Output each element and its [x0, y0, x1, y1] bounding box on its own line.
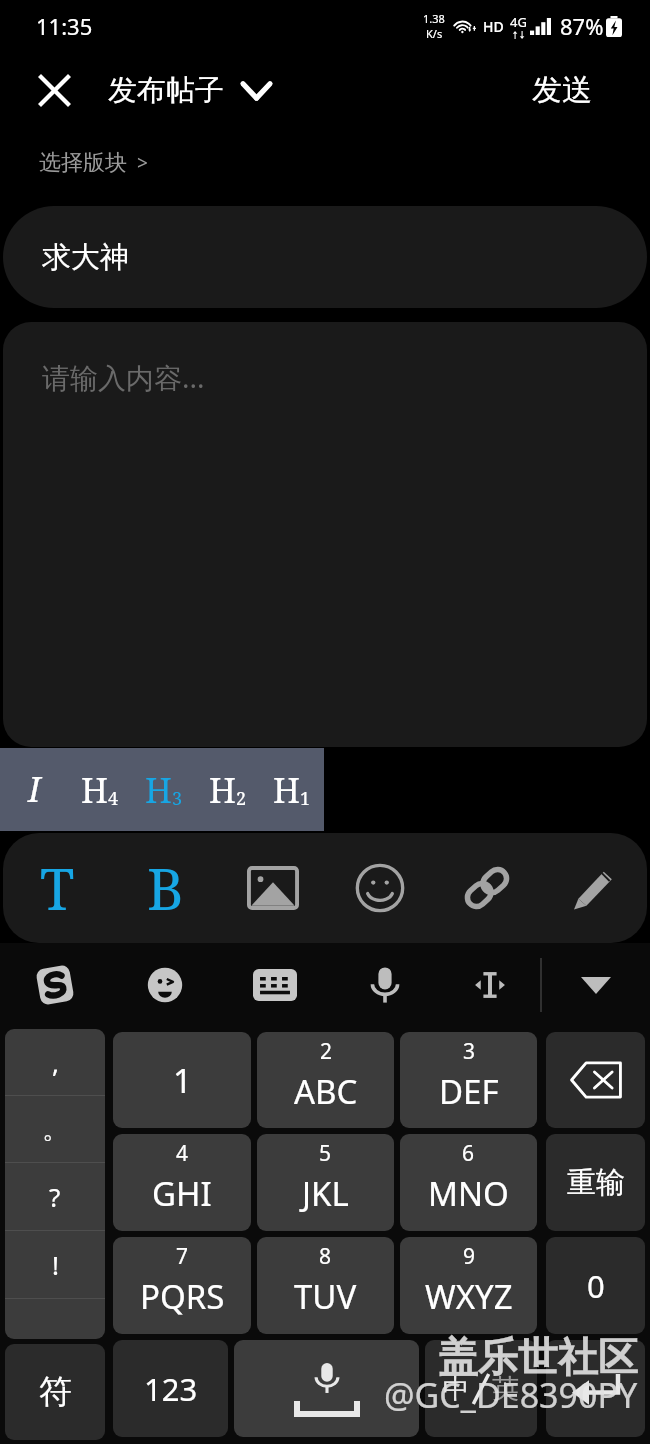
button[interactable]: 9	[400, 1237, 537, 1334]
button[interactable]: 发送	[496, 52, 650, 128]
button[interactable]: More punctuation	[5, 1299, 105, 1339]
button[interactable]: Voice input	[330, 943, 440, 1027]
staticText: 请输入内容...	[42, 358, 205, 396]
staticText: 符	[39, 1371, 72, 1413]
staticText: 87%	[560, 11, 604, 41]
staticText: T	[40, 850, 75, 926]
button[interactable]: Enter	[546, 1340, 645, 1437]
staticText: ?	[49, 1179, 61, 1214]
staticText: 11:35	[36, 11, 93, 41]
button[interactable]: 6	[400, 1134, 537, 1231]
button[interactable]: 请输入内容...	[3, 322, 647, 747]
staticText: 发布帖子	[108, 72, 224, 109]
button[interactable]: 求大神	[3, 206, 647, 308]
staticText: WXYZ	[425, 1274, 513, 1319]
button[interactable]: Insert link	[433, 833, 540, 943]
staticText: 英	[492, 1372, 519, 1406]
button[interactable]: Hide keyboard	[542, 943, 650, 1027]
staticText: 求大神	[42, 239, 129, 276]
staticText: 8	[319, 1242, 332, 1271]
staticText: B	[147, 850, 184, 926]
staticText: 1	[300, 786, 311, 811]
staticText: 2	[236, 786, 247, 811]
button[interactable]: 重输	[546, 1134, 645, 1231]
button[interactable]: Close	[0, 52, 108, 128]
button[interactable]: I	[0, 748, 68, 831]
button[interactable]: ?	[5, 1163, 105, 1230]
button[interactable]: 符	[5, 1344, 105, 1440]
button[interactable]: Insert image	[219, 833, 326, 943]
staticText: 4G	[510, 13, 527, 31]
button[interactable]: Emoji	[110, 943, 220, 1027]
staticText: 3	[172, 786, 183, 811]
button[interactable]: 5	[257, 1134, 394, 1231]
button[interactable]: 123	[113, 1340, 228, 1437]
staticText: !	[52, 1247, 59, 1282]
staticText: K/s	[426, 26, 443, 41]
staticText: DEF	[439, 1069, 499, 1114]
staticText: 9	[463, 1242, 476, 1271]
button[interactable]: 1	[113, 1032, 251, 1128]
button[interactable]: Draw	[540, 833, 647, 943]
button[interactable]: 3	[400, 1032, 537, 1128]
staticText: 选择版块	[39, 149, 127, 177]
staticText: 发送	[532, 71, 592, 109]
staticText: 5	[319, 1139, 332, 1168]
button[interactable]: ,	[5, 1029, 105, 1095]
button[interactable]: Space / voice input	[234, 1340, 419, 1437]
button[interactable]: !	[5, 1231, 105, 1298]
button[interactable]: Switch Chinese English	[425, 1340, 537, 1437]
staticText: 4	[108, 786, 119, 811]
staticText: ,	[52, 1045, 59, 1080]
button[interactable]: Bold	[111, 833, 219, 943]
staticText: I	[28, 766, 41, 812]
staticText: >	[137, 150, 148, 176]
button[interactable]: 7	[113, 1237, 251, 1334]
staticText: 3	[463, 1037, 476, 1066]
button[interactable]: 4	[113, 1134, 251, 1231]
staticText: 4	[176, 1139, 189, 1168]
button[interactable]: Text style	[3, 833, 111, 943]
button[interactable]: H	[196, 748, 260, 831]
button[interactable]: H	[132, 748, 196, 831]
staticText: TUV	[294, 1274, 357, 1319]
staticText: H	[81, 767, 108, 813]
staticText: 盖乐世社区	[438, 1332, 638, 1382]
staticText: 2	[320, 1037, 333, 1066]
staticText: GHI	[152, 1171, 212, 1216]
button[interactable]: Backspace	[546, 1032, 645, 1128]
button[interactable]: 8	[257, 1237, 394, 1334]
staticText: 6	[462, 1139, 475, 1168]
button[interactable]: Keyboard layout	[220, 943, 330, 1027]
staticText: 1	[173, 1058, 192, 1103]
button[interactable]: H	[68, 748, 132, 831]
staticText: HD	[483, 17, 504, 36]
staticText: H	[209, 767, 236, 813]
button[interactable]: Sogou input	[0, 943, 110, 1027]
staticText: JKL	[302, 1171, 349, 1216]
staticText: H	[273, 767, 300, 813]
button[interactable]: 2	[257, 1032, 394, 1128]
button[interactable]: Move cursor	[440, 943, 540, 1027]
button[interactable]: Emoji	[326, 833, 433, 943]
staticText: 0	[587, 1265, 605, 1307]
button[interactable]: 0	[546, 1237, 645, 1334]
button[interactable]: H	[260, 748, 324, 831]
staticText: ABC	[294, 1069, 358, 1114]
staticText: 7	[176, 1242, 189, 1271]
staticText: @GC_DE8390PY	[384, 1372, 638, 1418]
staticText: 123	[144, 1368, 198, 1410]
staticText: H	[145, 767, 172, 813]
staticText: 中	[443, 1372, 470, 1406]
button[interactable]: 选择版块	[0, 128, 650, 206]
staticText: PQRS	[140, 1274, 225, 1319]
staticText: MNO	[428, 1171, 509, 1216]
button[interactable]: 发布帖子	[108, 52, 279, 128]
staticText: 1.38	[423, 11, 445, 26]
button[interactable]: 。	[5, 1096, 105, 1162]
staticText: 。	[42, 1113, 68, 1146]
staticText: 重输	[567, 1164, 625, 1201]
